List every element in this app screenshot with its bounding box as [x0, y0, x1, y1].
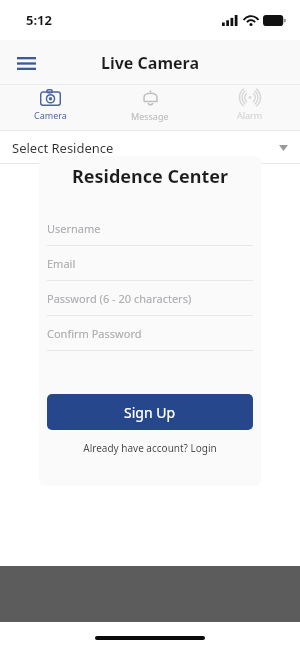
other: Expand: [276, 141, 290, 155]
button[interactable]: Select Residence: [0, 131, 300, 164]
staticText: Residence Center: [39, 164, 261, 189]
button[interactable]: Alarm: [200, 85, 300, 121]
button[interactable]: Menu: [8, 45, 44, 81]
staticText: Sign Up: [124, 403, 176, 422]
button[interactable]: Camera: [0, 85, 100, 121]
button[interactable]: Email: [39, 246, 261, 281]
button[interactable]: Already have account? Login: [39, 441, 261, 455]
staticText: Password (6 - 20 characters): [47, 291, 192, 306]
staticText: Confirm Password: [47, 326, 142, 341]
staticText: 5:12: [26, 11, 52, 29]
button[interactable]: Message: [100, 85, 200, 122]
button[interactable]: Username: [39, 211, 261, 246]
button[interactable]: Password (6 - 20 characters): [39, 281, 261, 316]
staticText: Alarm: [237, 109, 263, 121]
button[interactable]: Sign Up: [47, 394, 253, 430]
staticText: Already have account? Login: [83, 441, 217, 455]
staticText: Select Residence: [12, 139, 114, 157]
staticText: Message: [131, 110, 169, 122]
staticText: Username: [47, 221, 101, 236]
staticText: Email: [47, 256, 76, 271]
staticText: Camera: [34, 109, 67, 121]
staticText: Live Camera: [101, 52, 200, 74]
button[interactable]: Confirm Password: [39, 316, 261, 351]
